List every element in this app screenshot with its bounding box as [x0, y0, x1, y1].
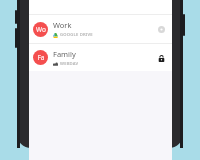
staticText: WEBDAV	[60, 61, 79, 67]
button[interactable]: Locked	[153, 50, 169, 66]
staticText: Work	[53, 20, 72, 30]
staticText: Family	[53, 49, 76, 59]
button[interactable]: Fa	[29, 44, 172, 71]
button[interactable]: Settings	[153, 21, 169, 37]
staticText: GOOGLE DRIVE	[60, 32, 93, 38]
staticText: Fa	[37, 53, 45, 62]
button[interactable]: Wo	[29, 15, 172, 43]
staticText: Wo	[36, 25, 46, 34]
